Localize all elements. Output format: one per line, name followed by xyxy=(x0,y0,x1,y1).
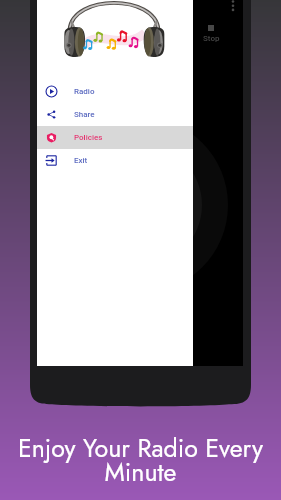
button[interactable]: Stop xyxy=(191,25,231,43)
button[interactable]: Policies xyxy=(37,126,193,149)
button[interactable]: Share xyxy=(37,103,193,126)
button[interactable]: Exit xyxy=(37,149,193,172)
staticText: Stop xyxy=(203,34,220,43)
button[interactable]: More options xyxy=(226,0,240,15)
staticText: Policies xyxy=(74,133,103,142)
staticText: Enjoy Your Radio Every Minute xyxy=(18,430,263,491)
staticText: Radio xyxy=(74,87,95,96)
staticText: Exit xyxy=(74,156,88,165)
staticText: Share xyxy=(74,110,95,119)
button[interactable]: Radio xyxy=(37,80,193,103)
